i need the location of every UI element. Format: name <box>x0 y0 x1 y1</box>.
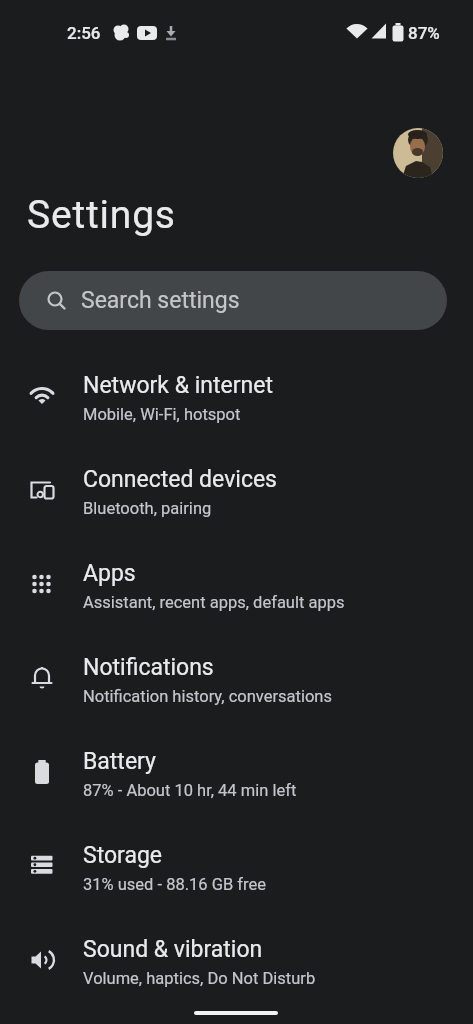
staticText: Connected devices <box>83 466 277 493</box>
staticText: Battery <box>83 748 156 775</box>
button[interactable]: Storage <box>0 819 473 913</box>
staticText: Notifications <box>83 654 214 681</box>
staticText: Assistant, recent apps, default apps <box>83 593 345 612</box>
button[interactable]: Battery <box>0 725 473 819</box>
staticText: Network & internet <box>83 372 273 399</box>
button[interactable]: Network & internet <box>0 349 473 443</box>
staticText: Storage <box>83 842 163 869</box>
staticText: Notification history, conversations <box>83 687 332 706</box>
staticText: Bluetooth, pairing <box>83 499 212 518</box>
button[interactable]: Sound & vibration <box>0 913 473 1007</box>
button[interactable]: Apps <box>0 537 473 631</box>
button[interactable]: Notifications <box>0 631 473 725</box>
staticText: Settings <box>27 192 176 238</box>
staticText: 31% used - 88.16 GB free <box>83 875 266 894</box>
staticText: Sound & vibration <box>83 936 263 963</box>
staticText: 87% - About 10 hr, 44 min left <box>83 781 297 800</box>
staticText: Volume, haptics, Do Not Disturb <box>83 969 316 988</box>
button[interactable]: Search settings <box>19 271 447 330</box>
staticText: Mobile, Wi-Fi, hotspot <box>83 405 241 424</box>
staticText: Search settings <box>81 287 240 314</box>
staticText: 2:56 <box>67 23 101 43</box>
staticText: 87% <box>408 23 440 43</box>
staticText: Apps <box>83 560 136 587</box>
button[interactable]: Connected devices <box>0 443 473 537</box>
button[interactable] <box>393 128 443 178</box>
